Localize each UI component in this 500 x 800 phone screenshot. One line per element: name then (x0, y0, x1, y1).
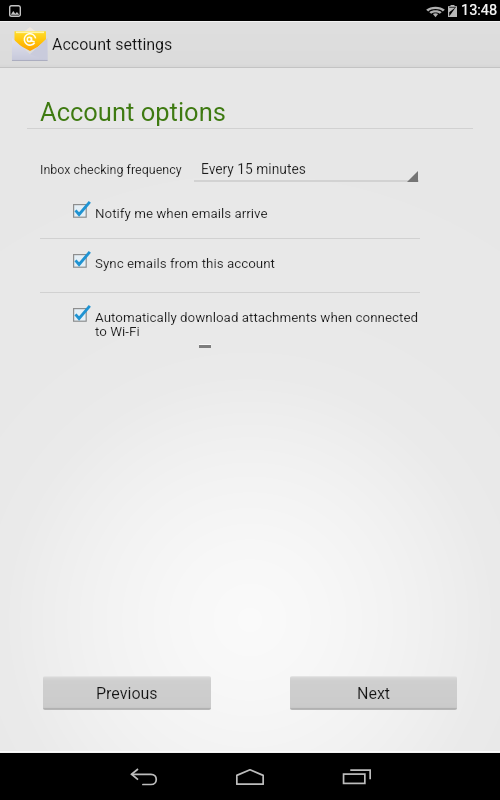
staticText: 13:48 (461, 2, 498, 19)
button[interactable]: Every 15 minutes (194, 157, 419, 182)
staticText: Automatically download attachments when … (95, 310, 422, 340)
staticText: Account settings (52, 35, 173, 54)
staticText: Account options (40, 97, 226, 127)
staticText: Previous (96, 684, 158, 703)
button[interactable]: Next (290, 676, 457, 710)
button[interactable]: Automatically download attachments when … (0, 293, 500, 348)
button[interactable]: Recent apps (320, 753, 394, 800)
staticText: Sync emails from this account (95, 256, 275, 272)
button[interactable]: Notify me when emails arrive (0, 196, 500, 238)
button[interactable]: Home (213, 753, 287, 800)
button[interactable]: Back (107, 753, 181, 800)
staticText: Notify me when emails arrive (95, 206, 268, 222)
button[interactable]: Previous (43, 676, 211, 710)
staticText: Next (357, 684, 391, 703)
staticText: Every 15 minutes (201, 161, 306, 177)
staticText: Inbox checking frequency (40, 162, 182, 177)
button[interactable]: Sync emails from this account (0, 239, 500, 292)
